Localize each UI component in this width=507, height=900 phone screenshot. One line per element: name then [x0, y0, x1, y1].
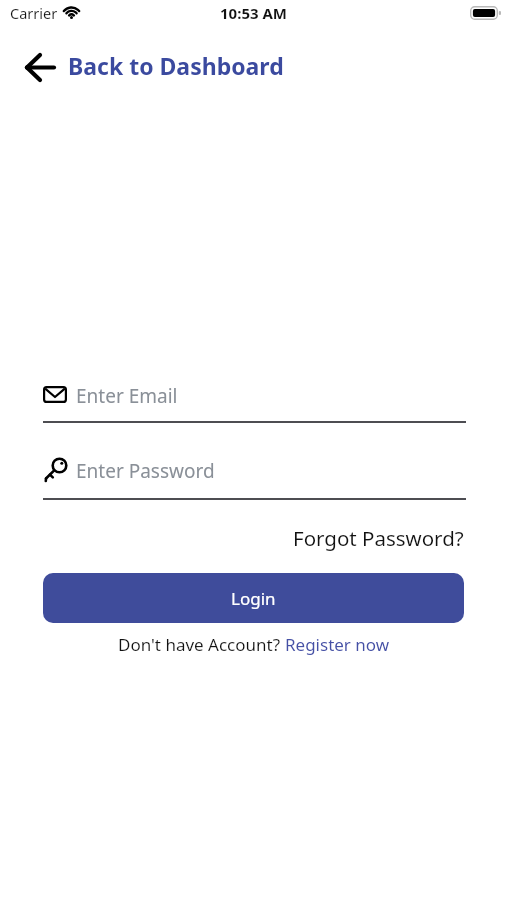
staticText: Enter Password — [76, 458, 215, 484]
staticText: 10:53 AM — [220, 3, 287, 23]
staticText: Login — [231, 587, 276, 610]
staticText: Don't have Account? — [118, 633, 285, 656]
button[interactable]: Register now — [285, 633, 390, 656]
button[interactable]: Back to Dashboard — [25, 48, 284, 82]
staticText: Carrier — [10, 3, 58, 23]
button[interactable]: Login — [43, 573, 464, 623]
staticText: Enter Email — [76, 383, 178, 409]
staticText: Back to Dashboard — [68, 50, 284, 81]
button[interactable]: Forgot Password? — [293, 524, 464, 552]
